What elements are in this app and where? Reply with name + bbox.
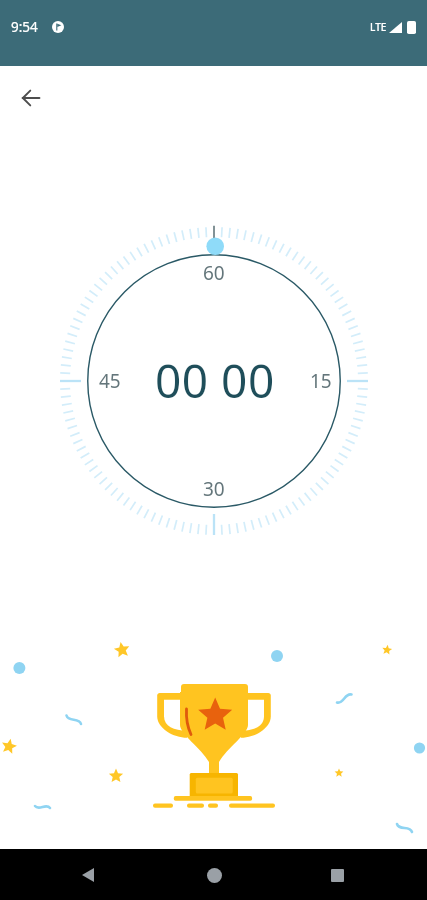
staticText: LTE [370,20,387,34]
button[interactable]: Home [190,851,238,899]
staticText: 60 [203,260,225,286]
staticText: 9:54 [11,18,38,36]
staticText: 15 [310,368,332,394]
button[interactable]: Recents [313,851,361,899]
button[interactable]: Back [64,851,112,899]
button[interactable]: Back [7,74,55,122]
staticText: 45 [99,368,121,394]
staticText: 30 [203,476,225,502]
staticText: 00 00 [155,349,275,412]
